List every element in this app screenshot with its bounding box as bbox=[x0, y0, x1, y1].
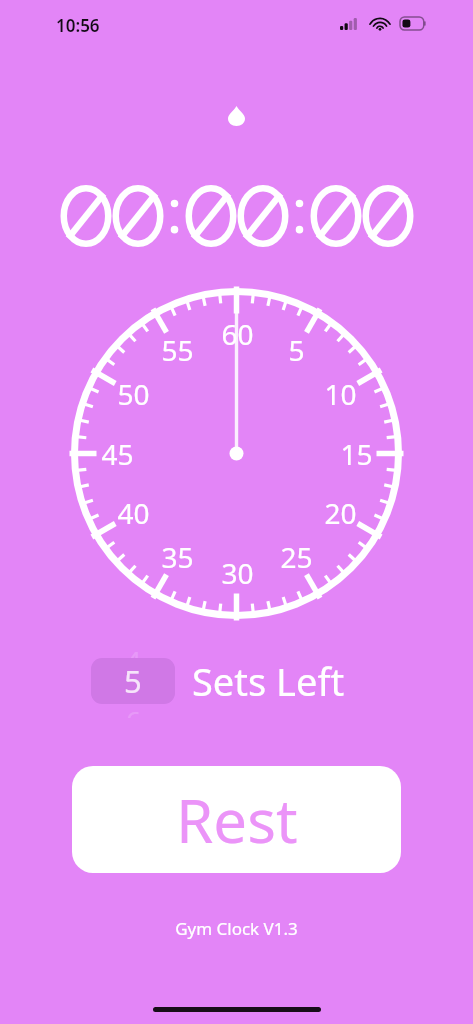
button[interactable]: 5 bbox=[91, 658, 175, 704]
staticText: 5 bbox=[288, 331, 305, 369]
staticText: 40 bbox=[117, 494, 150, 532]
staticText: 6 bbox=[126, 702, 141, 718]
staticText: 10:56 bbox=[56, 14, 100, 37]
staticText: Rest bbox=[176, 779, 298, 861]
staticText: 20 bbox=[324, 494, 357, 532]
staticText: 30 bbox=[221, 554, 254, 592]
staticText: 50 bbox=[117, 375, 150, 413]
staticText: 60 bbox=[221, 315, 254, 353]
staticText: 55 bbox=[161, 331, 194, 369]
staticText: 25 bbox=[280, 538, 313, 576]
staticText: 15 bbox=[340, 435, 373, 473]
staticText: 35 bbox=[161, 538, 194, 576]
button[interactable]: Rest bbox=[72, 766, 401, 873]
staticText: 10 bbox=[324, 375, 357, 413]
staticText: Sets Left bbox=[192, 655, 345, 707]
staticText: 4 bbox=[126, 642, 141, 658]
staticText: 5 bbox=[124, 660, 142, 702]
other: Sweat drop bbox=[228, 106, 245, 126]
staticText: Gym Clock V1.3 bbox=[175, 917, 298, 940]
staticText: 45 bbox=[101, 435, 134, 473]
